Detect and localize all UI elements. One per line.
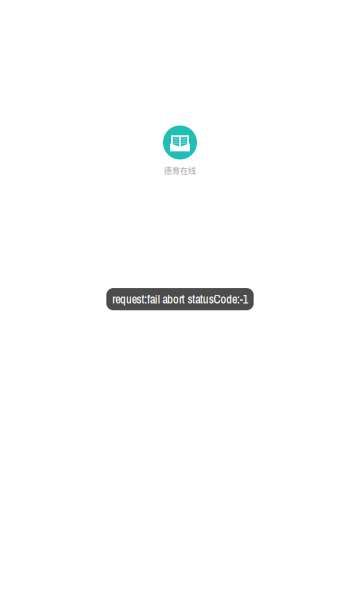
staticText: request:fail abort statusCode:-1 [112,291,248,307]
staticText: 德育在线 [164,164,196,176]
